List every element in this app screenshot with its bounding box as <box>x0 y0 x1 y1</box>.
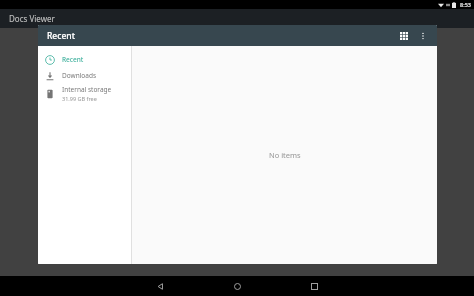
staticText: Downloads <box>62 71 97 80</box>
staticText: Recent <box>62 55 84 64</box>
staticText: 8:53 <box>460 1 471 8</box>
button[interactable]: Recent <box>38 51 131 67</box>
staticText: Docs Viewer <box>9 13 55 24</box>
button[interactable]: Home <box>227 276 247 296</box>
staticText: No items <box>269 150 301 160</box>
staticText: 31.99 GB free <box>62 95 97 102</box>
button[interactable]: Downloads <box>38 67 131 83</box>
staticText: Internal storage <box>62 85 112 94</box>
button[interactable]: Grid view <box>394 26 414 46</box>
staticText: Recent <box>47 30 75 42</box>
button[interactable]: More options <box>414 27 432 45</box>
button[interactable]: Back <box>150 276 170 296</box>
button[interactable]: Recent apps <box>304 276 324 296</box>
button[interactable]: Internal storage <box>38 83 131 103</box>
